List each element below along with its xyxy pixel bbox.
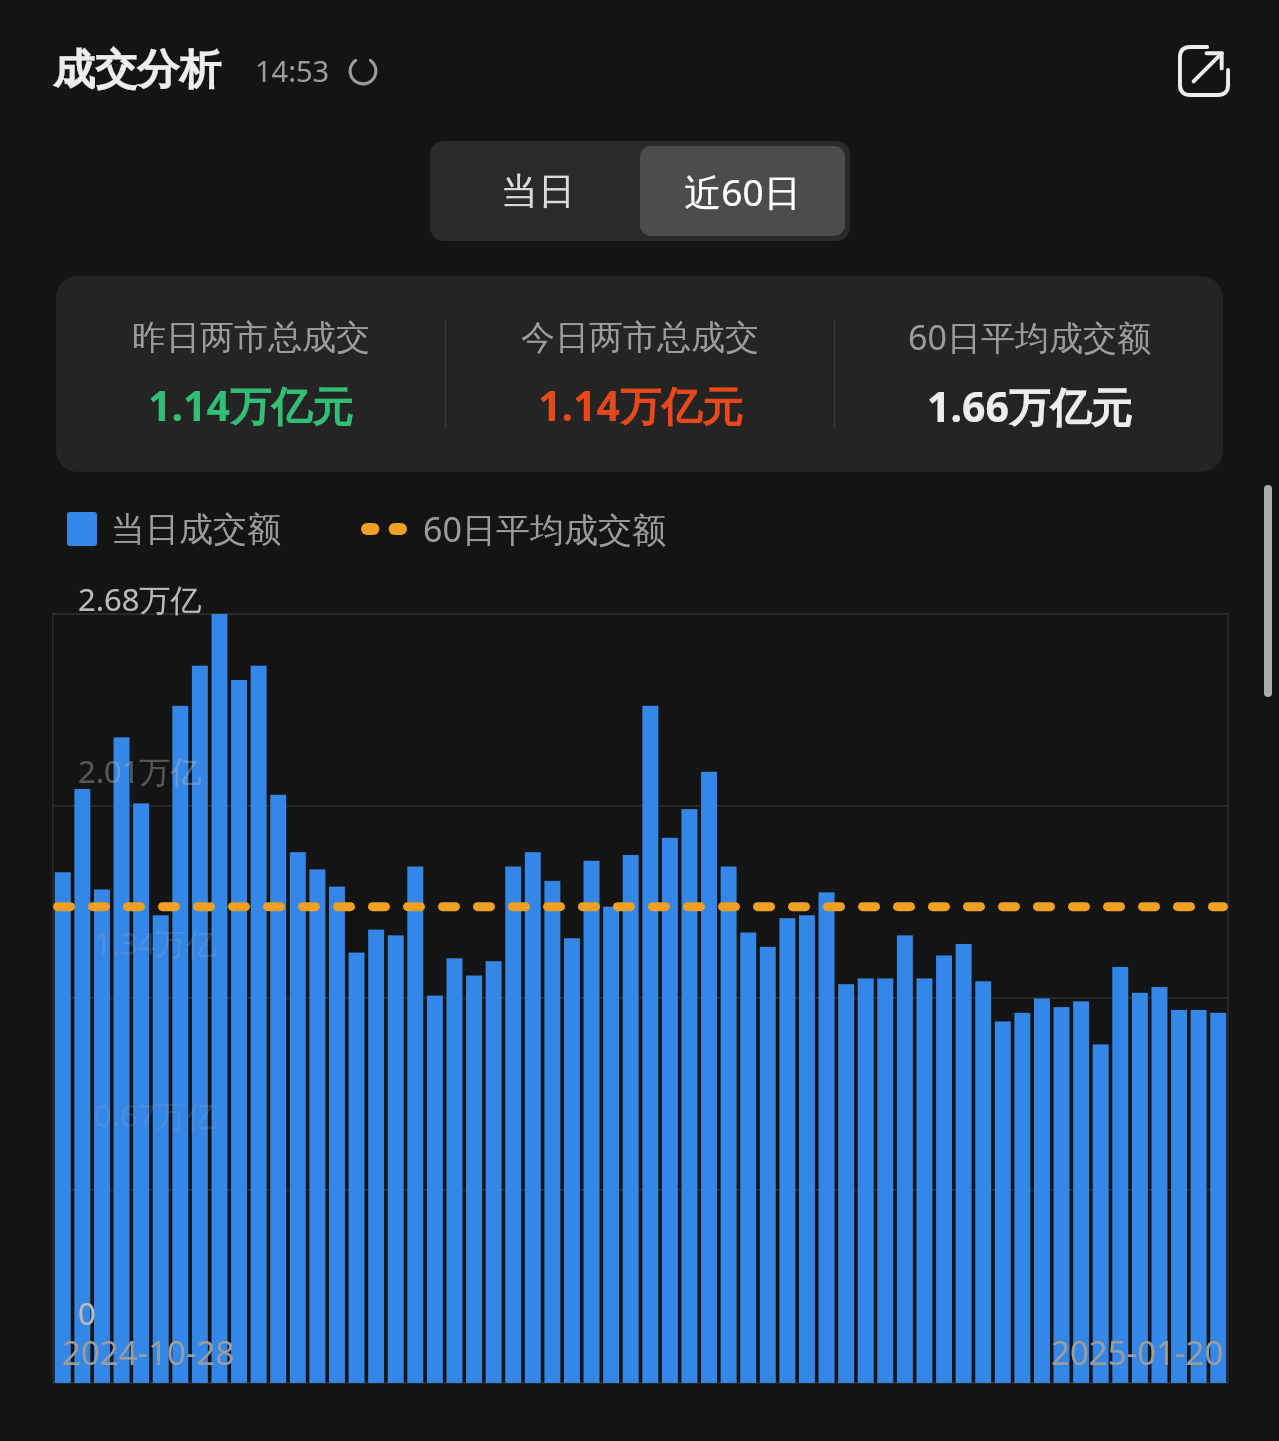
button[interactable]: Share — [1169, 36, 1239, 106]
button[interactable]: 今日两市总成交 — [446, 316, 834, 433]
staticText: 60日平均成交额 — [908, 314, 1151, 360]
staticText: 今日两市总成交 — [521, 316, 759, 359]
staticText: 2.01万亿 — [78, 750, 202, 792]
staticText: 14:53 — [255, 51, 330, 90]
button[interactable]: 当日 — [435, 146, 640, 236]
staticText: 0 — [78, 1292, 96, 1334]
staticText: 近60日 — [684, 166, 801, 217]
staticText: 60日平均成交额 — [423, 506, 666, 552]
staticText: 1.14万亿元 — [538, 377, 743, 433]
staticText: 2025-01-20 — [1051, 1330, 1224, 1375]
button[interactable]: 近60日 — [640, 146, 845, 236]
staticText: 当日成交额 — [111, 508, 281, 551]
staticText: 0.67万亿 — [94, 1094, 218, 1136]
staticText: 2.68万亿 — [78, 578, 202, 620]
staticText: 1.34万亿 — [94, 922, 218, 964]
staticText: 2024-10-28 — [62, 1330, 235, 1375]
button[interactable]: Refresh — [345, 53, 381, 89]
staticText: 当日 — [501, 168, 575, 215]
button[interactable]: 60日平均成交额 — [835, 314, 1223, 434]
staticText: 1.66万亿元 — [927, 378, 1132, 434]
staticText: 成交分析 — [53, 44, 221, 97]
staticText: 昨日两市总成交 — [132, 316, 370, 359]
staticText: 1.14万亿元 — [148, 377, 353, 433]
button[interactable]: 昨日两市总成交 — [56, 316, 445, 433]
